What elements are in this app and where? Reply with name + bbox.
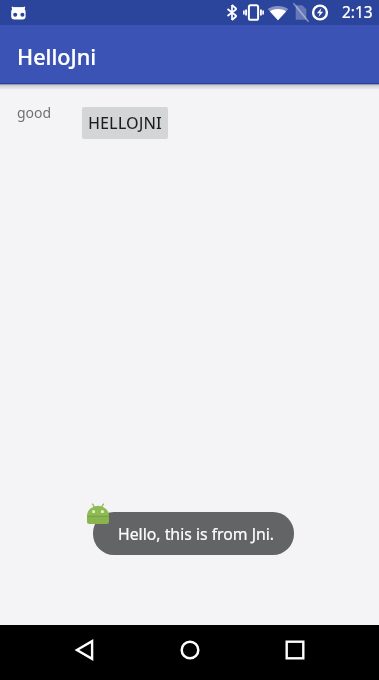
button[interactable]: Recent apps: [264, 625, 326, 680]
button[interactable]: HELLOJNI: [82, 107, 168, 139]
staticText: good: [17, 103, 52, 122]
staticText: HelloJni: [17, 42, 97, 71]
staticText: Hello, this is from Jni.: [118, 523, 275, 545]
staticText: HELLOJNI: [88, 112, 162, 134]
staticText: 2:13: [342, 2, 373, 23]
button[interactable]: Back: [54, 625, 116, 680]
button[interactable]: Home: [159, 625, 221, 680]
